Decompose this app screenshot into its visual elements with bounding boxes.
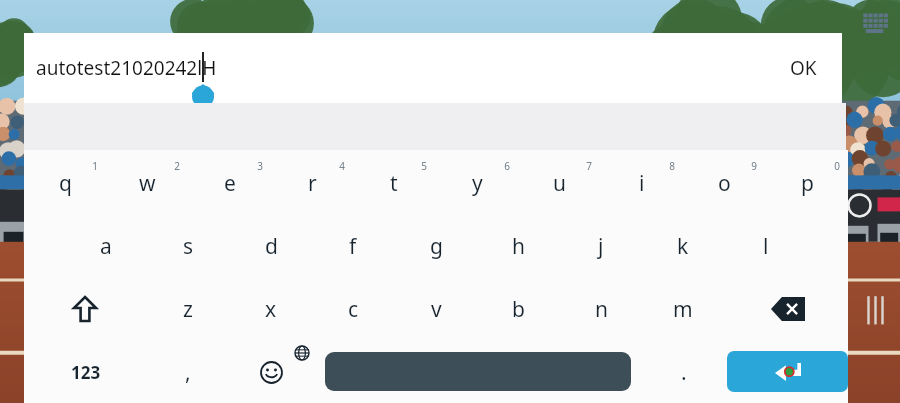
staticText: n (595, 295, 608, 324)
button[interactable]: OK (764, 33, 842, 103)
button[interactable]: g (403, 220, 469, 272)
button[interactable]: z (155, 283, 221, 335)
button[interactable]: n (568, 283, 634, 335)
staticText: y (472, 169, 483, 198)
button[interactable]: , (155, 346, 221, 398)
staticText: OK (790, 55, 817, 81)
staticText: c (348, 295, 359, 324)
staticText: 0 (834, 159, 840, 173)
staticText: w (139, 169, 156, 198)
staticText: s (183, 232, 194, 261)
button[interactable]: i (609, 157, 675, 209)
button[interactable]: r (279, 157, 345, 209)
button[interactable]: k (650, 220, 716, 272)
button[interactable]: Change language (288, 340, 316, 366)
button[interactable]: l (733, 220, 799, 272)
button[interactable]: w (114, 157, 180, 209)
staticText: m (673, 295, 693, 324)
button[interactable]: b (485, 283, 551, 335)
staticText: a (100, 232, 112, 261)
button[interactable]: y (444, 157, 510, 209)
button[interactable]: e (197, 157, 263, 209)
staticText: v (431, 295, 442, 324)
staticText: z (183, 295, 193, 324)
staticText: . (681, 358, 687, 387)
button[interactable]: Emoji (252, 352, 290, 392)
staticText: 1 (92, 159, 98, 173)
staticText: q (59, 169, 72, 198)
staticText: , (185, 358, 191, 387)
staticText: x (265, 295, 277, 324)
button[interactable]: c (320, 283, 386, 335)
button[interactable]: Show keyboard (862, 12, 888, 32)
staticText: f (349, 232, 357, 261)
button[interactable]: Enter (727, 351, 848, 392)
button[interactable]: f (320, 220, 386, 272)
button[interactable]: m (650, 283, 716, 335)
button[interactable]: h (485, 220, 551, 272)
button[interactable]: s (155, 220, 221, 272)
button[interactable]: x (238, 283, 304, 335)
button[interactable]: d (238, 220, 304, 272)
staticText: l (763, 232, 769, 261)
button[interactable]: o (691, 157, 757, 209)
staticText: autotest21020242lH (36, 55, 217, 81)
staticText: t (390, 169, 398, 198)
staticText: k (677, 232, 689, 261)
staticText: r (308, 169, 317, 198)
button[interactable]: Space (325, 352, 631, 391)
staticText: 9 (751, 159, 757, 173)
button[interactable]: p (774, 157, 840, 209)
button[interactable]: j (568, 220, 634, 272)
staticText: 2 (174, 159, 180, 173)
staticText: e (224, 169, 236, 198)
staticText: 8 (669, 159, 675, 173)
button[interactable]: v (403, 283, 469, 335)
button[interactable]: u (526, 157, 592, 209)
button[interactable]: t (361, 157, 427, 209)
staticText: o (718, 169, 731, 198)
staticText: 5 (421, 159, 427, 173)
staticText: 7 (586, 159, 592, 173)
staticText: u (553, 169, 566, 198)
button[interactable]: a (73, 220, 139, 272)
staticText: d (265, 232, 278, 261)
staticText: i (639, 169, 645, 198)
button[interactable]: . (651, 346, 717, 398)
staticText: b (512, 295, 525, 324)
staticText: 123 (71, 361, 101, 384)
staticText: 4 (339, 159, 345, 173)
staticText: 3 (257, 159, 263, 173)
button[interactable]: 123 (55, 350, 117, 394)
staticText: j (598, 232, 604, 261)
staticText: p (801, 169, 814, 198)
button[interactable]: Backspace (757, 283, 819, 335)
staticText: g (430, 232, 443, 261)
button[interactable]: Shift (52, 283, 118, 335)
button[interactable]: q (32, 157, 98, 209)
staticText: 6 (504, 159, 510, 173)
staticText: h (512, 232, 525, 261)
